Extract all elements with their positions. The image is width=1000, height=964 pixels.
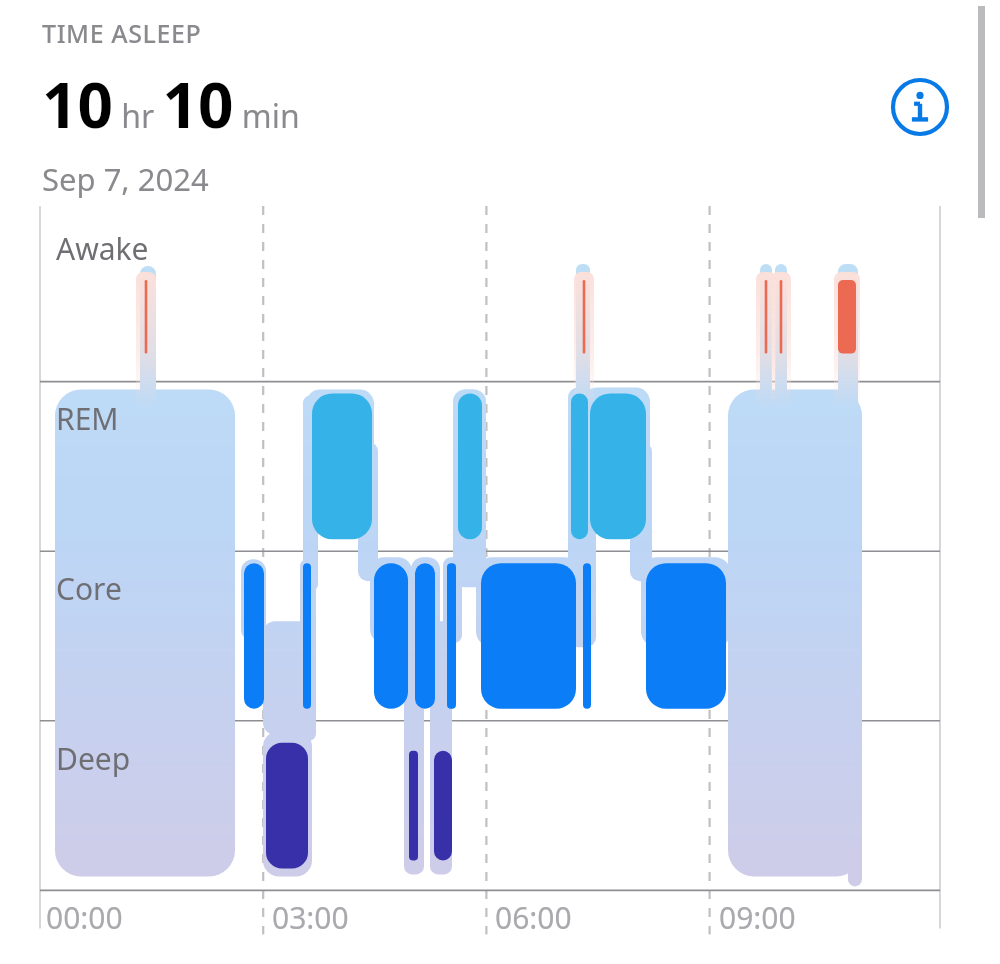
staticText: Awake <box>56 228 149 269</box>
staticText: TIME ASLEEP <box>42 16 202 50</box>
staticText: 10 hr 10 min <box>42 62 300 146</box>
staticText: 06:00 <box>495 897 572 938</box>
staticText: Deep <box>56 738 131 779</box>
staticText: 03:00 <box>272 897 349 938</box>
staticText: Sep 7, 2024 <box>42 158 209 200</box>
button[interactable]: Information about sleep stages <box>889 76 951 138</box>
staticText: 09:00 <box>719 897 796 938</box>
staticText: Core <box>56 568 122 609</box>
staticText: 00:00 <box>46 897 123 938</box>
staticText: REM <box>56 398 119 439</box>
